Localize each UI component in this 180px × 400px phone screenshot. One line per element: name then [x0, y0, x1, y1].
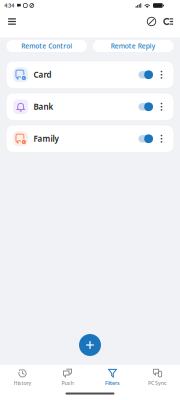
staticText: 4:34: [4, 2, 14, 9]
staticText: Filters: [105, 379, 120, 387]
button[interactable]: Card: [6, 61, 173, 88]
staticText: History: [13, 379, 31, 387]
button[interactable]: History: [0, 365, 45, 389]
staticText: Card: [34, 69, 52, 80]
button[interactable]: Sort: [160, 13, 177, 29]
staticText: Remote Reply: [111, 42, 156, 50]
button[interactable]: PC Sync: [135, 365, 180, 389]
button[interactable]: Menu: [3, 13, 21, 29]
button[interactable]: Bank: [6, 93, 173, 120]
button[interactable]: Filters: [90, 365, 135, 389]
staticText: Push: [61, 379, 73, 387]
button[interactable]: Remote Control: [6, 40, 87, 52]
staticText: Remote Control: [21, 42, 72, 50]
button[interactable]: Family: [6, 125, 173, 152]
staticText: Bank: [34, 101, 54, 112]
staticText: Family: [34, 133, 59, 144]
button[interactable]: Add: [78, 333, 102, 357]
staticText: PC Sync: [148, 379, 167, 387]
button[interactable]: Remote Reply: [93, 40, 173, 52]
button[interactable]: Push: [45, 365, 90, 389]
button[interactable]: Do Not Disturb: [143, 13, 160, 29]
